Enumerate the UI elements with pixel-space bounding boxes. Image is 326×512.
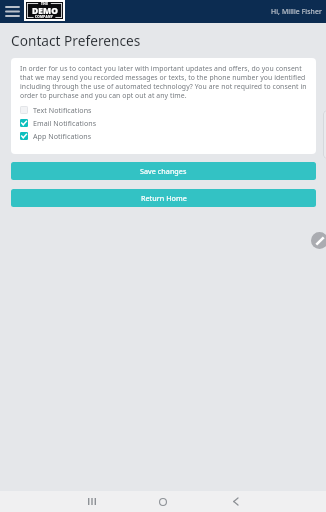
staticText: Return Home (141, 193, 187, 203)
button[interactable]: Email Notifications (20, 116, 307, 129)
button[interactable]: Back (220, 492, 250, 511)
button[interactable]: Home (148, 492, 178, 511)
staticText: Email Notifications (33, 118, 97, 128)
staticText: THE (41, 2, 49, 6)
button[interactable]: Text Notifications (20, 103, 307, 116)
button[interactable]: Return Home (11, 189, 316, 207)
staticText: Text Notifications (33, 105, 92, 115)
staticText: Save changes (140, 166, 187, 176)
staticText: COMPANY (35, 15, 54, 19)
staticText: Contact Preferences (11, 31, 141, 50)
staticText: In order for us to contact you later wit… (20, 64, 307, 100)
button[interactable]: Recent apps (77, 492, 107, 511)
button[interactable]: Save changes (11, 162, 316, 180)
staticText: App Notifications (33, 131, 92, 141)
button[interactable]: App Notifications (20, 129, 307, 142)
staticText: DEMO (32, 5, 58, 16)
button[interactable]: Edit (311, 232, 326, 249)
button[interactable]: Menu (1, 0, 24, 23)
staticText: Hi, Millie Fisher (271, 7, 322, 16)
